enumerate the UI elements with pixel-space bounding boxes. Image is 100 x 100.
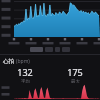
staticText: 最大 [71,79,80,83]
staticText: 132 [17,66,33,78]
button[interactable]: Chart option 1 [30,47,43,52]
button[interactable]: Chart option 4 [62,47,70,52]
staticText: (bpm) [16,58,30,65]
button[interactable]: Chart option 3 [55,47,60,52]
button[interactable]: 132 [0,66,50,83]
staticText: 心拍 [3,58,14,65]
staticText: 175 [67,66,83,78]
button[interactable]: 175 [50,66,100,83]
staticText: 平均 [21,79,30,83]
button[interactable]: 心拍 [0,57,100,66]
button[interactable]: Chart option 2 [45,47,53,52]
